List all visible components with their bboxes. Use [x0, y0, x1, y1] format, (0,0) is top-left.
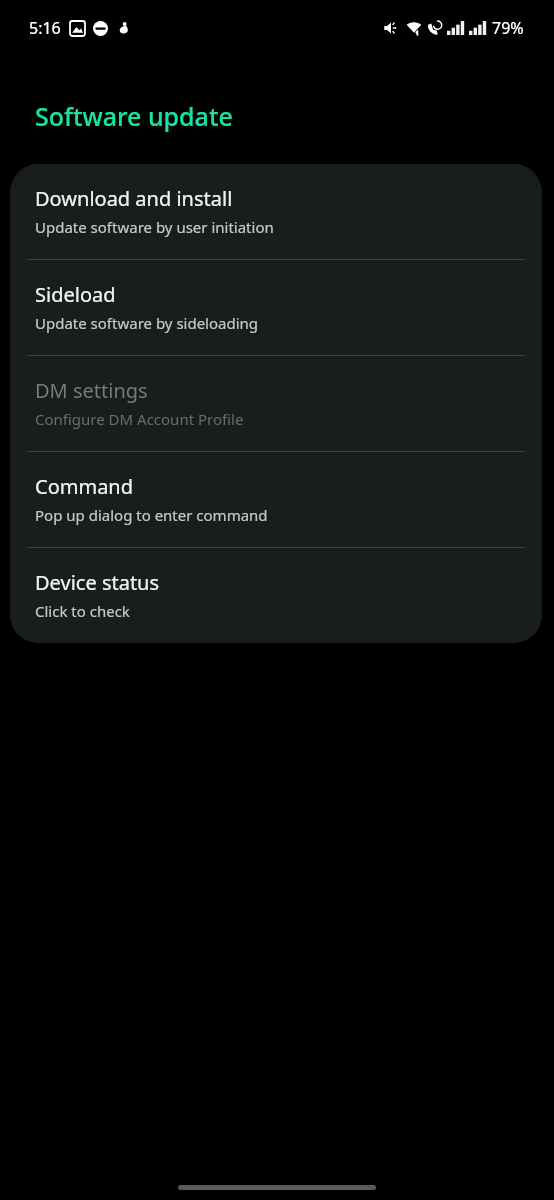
staticText: Pop up dialog to enter command	[35, 505, 268, 525]
staticText: Configure DM Account Profile	[35, 409, 244, 429]
button[interactable]: Device status	[10, 548, 542, 643]
staticText: 5:16	[29, 17, 61, 39]
staticText: Update software by sideloading	[35, 313, 259, 333]
button[interactable]: Command	[10, 452, 542, 547]
staticText: Software update	[35, 99, 233, 133]
staticText: Click to check	[35, 601, 130, 621]
staticText: DM settings	[35, 377, 148, 404]
staticText: Command	[35, 473, 134, 500]
staticText: Download and install	[35, 185, 233, 212]
button: DM settings	[10, 356, 542, 451]
staticText: Sideload	[35, 281, 116, 308]
staticText: Update software by user initiation	[35, 217, 274, 237]
staticText: 79%	[492, 17, 524, 39]
button[interactable]: Download and install	[10, 164, 542, 259]
button[interactable]: Sideload	[10, 260, 542, 355]
staticText: Device status	[35, 569, 160, 596]
